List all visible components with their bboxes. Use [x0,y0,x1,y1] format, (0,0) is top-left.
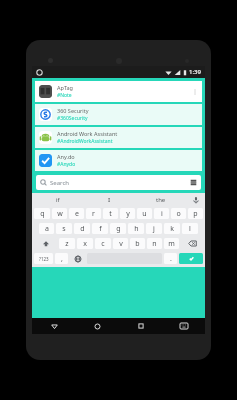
staticText: ApTag [57,84,73,91]
staticText: , [61,254,63,264]
button[interactable]: m [164,238,179,249]
button[interactable]: 360 Security [35,104,202,125]
staticText: x [83,239,87,249]
button[interactable]: z [59,238,75,249]
button[interactable]: x [77,238,93,249]
button[interactable]: k [164,223,180,234]
staticText: r [92,209,95,219]
staticText: Search [50,179,69,187]
button[interactable]: , [55,253,68,264]
button[interactable]: n [147,238,162,249]
button[interactable]: Language [70,253,85,264]
button[interactable]: Voice input [187,193,205,206]
button[interactable]: c [95,238,111,249]
button[interactable]: the [135,193,187,206]
staticText: Android Work Assistant [57,130,118,137]
staticText: k [170,224,174,234]
staticText: b [135,239,140,249]
staticText: o [176,209,181,219]
staticText: Any.do [57,153,75,160]
other: Menu [190,179,197,186]
staticText: v [119,239,123,249]
button[interactable]: I [83,193,135,206]
button[interactable]: u [137,208,152,219]
button[interactable]: if [32,193,83,206]
staticText: j [153,224,155,234]
button[interactable]: Recents [119,318,162,334]
button[interactable]: Keyboard [162,318,205,334]
button[interactable]: Search [36,175,201,190]
button[interactable]: l [182,223,198,234]
staticText: z [65,239,69,249]
button[interactable]: Back [32,318,76,334]
staticText: e [75,209,79,219]
button[interactable]: p [188,208,203,219]
staticText: #Anydo [57,161,76,168]
button[interactable]: Home [76,318,119,334]
staticText: 1:39 [189,68,201,76]
button[interactable]: j [146,223,162,234]
button[interactable]: Any.do [35,150,202,171]
button[interactable]: d [74,223,90,234]
staticText: f [99,224,102,234]
button[interactable]: g [110,223,126,234]
staticText: the [156,196,166,204]
staticText: n [152,239,157,249]
button[interactable]: f [92,223,108,234]
staticText: q [40,209,45,219]
button[interactable]: a [39,223,54,234]
staticText: m [168,239,175,249]
button[interactable]: h [128,223,144,234]
staticText: ?123 [39,256,49,262]
staticText: y [126,209,130,219]
staticText: #360Security [57,115,88,122]
staticText: i [161,209,163,219]
staticText: c [101,239,105,249]
button[interactable]: i [154,208,169,219]
staticText: I [108,196,111,204]
button[interactable]: s [56,223,72,234]
button[interactable]: Android Work Assistant [35,127,202,148]
button[interactable]: w [52,208,67,219]
staticText: #AndroidWorkAssistant [57,138,113,145]
staticText: #Note [57,92,72,99]
staticText: h [134,224,139,234]
button[interactable]: Enter [179,253,203,264]
button[interactable]: e [69,208,84,219]
staticText: if [56,196,60,204]
staticText: u [142,209,147,219]
button[interactable]: r [86,208,101,219]
staticText: d [80,224,85,234]
staticText: t [109,209,112,219]
staticText: g [116,224,121,234]
button[interactable]: ?123 [34,253,53,264]
button[interactable]: Shift [34,238,57,249]
button[interactable]: ApTag [35,81,202,102]
button[interactable]: v [113,238,128,249]
staticText: . [170,254,172,264]
button[interactable]: Backspace [181,238,203,249]
button[interactable]: y [120,208,135,219]
button[interactable]: b [130,238,145,249]
button[interactable]: . [164,253,177,264]
staticText: a [45,224,49,234]
staticText: w [57,209,63,219]
button[interactable]: t [103,208,118,219]
staticText: l [189,224,191,234]
button[interactable]: o [171,208,186,219]
staticText: p [193,209,198,219]
staticText: s [62,224,66,234]
staticText: 360 Security [57,107,89,114]
button[interactable]: q [34,208,50,219]
